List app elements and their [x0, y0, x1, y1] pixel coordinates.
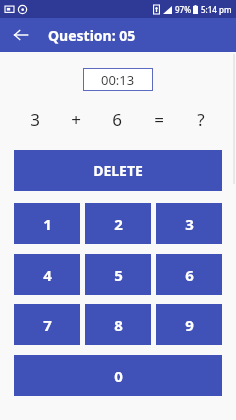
staticText: 0	[114, 366, 123, 386]
staticText: 4	[43, 265, 52, 285]
staticText: 2	[114, 214, 123, 234]
staticText: 7	[43, 315, 52, 335]
button[interactable]: 3	[156, 203, 222, 244]
staticText: 5:14 pm	[201, 4, 232, 15]
button[interactable]: Back	[8, 22, 34, 48]
button[interactable]: 4	[14, 254, 80, 295]
staticText: Question: 05	[48, 26, 136, 45]
button[interactable]: 00:13	[83, 68, 153, 91]
staticText: 8	[114, 315, 123, 335]
staticText: =	[154, 108, 164, 131]
staticText: DELETE	[93, 161, 143, 180]
staticText: 3	[30, 108, 40, 131]
staticText: 1	[43, 214, 52, 234]
staticText: 9	[185, 315, 194, 335]
staticText: 6	[185, 265, 194, 285]
staticText: 97%	[175, 4, 191, 15]
button[interactable]: 2	[85, 203, 151, 244]
staticText: 00:13	[101, 71, 135, 89]
button[interactable]: DELETE	[14, 150, 222, 191]
staticText: ?	[197, 108, 205, 131]
staticText: 5	[114, 265, 123, 285]
button[interactable]: 6	[156, 254, 222, 295]
button[interactable]: 7	[14, 304, 80, 345]
button[interactable]: 8	[85, 304, 151, 345]
staticText: +	[71, 108, 81, 131]
button[interactable]: 1	[14, 203, 80, 244]
button[interactable]: 0	[14, 355, 222, 396]
button[interactable]: 5	[85, 254, 151, 295]
button[interactable]: 9	[156, 304, 222, 345]
staticText: 3	[185, 214, 194, 234]
staticText: 6	[112, 108, 122, 131]
